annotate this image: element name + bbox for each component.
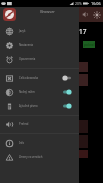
button[interactable]: Jazyk — [0, 24, 79, 38]
staticText: Zmeny vo verziách — [19, 155, 79, 159]
staticText: pokrač — [84, 42, 95, 47]
staticText: Info — [19, 141, 79, 145]
staticText: 20% — [75, 1, 82, 6]
button[interactable]: Toggle on — [61, 86, 73, 98]
button[interactable]: Nočný režim — [0, 85, 79, 99]
staticText: Celá obrazovka — [19, 76, 61, 80]
button[interactable]: Zmeny vo verziách — [0, 150, 79, 164]
staticText: Browser — [40, 9, 55, 14]
staticText: Aj tučné písmo — [19, 104, 61, 108]
button[interactable]: Toggle on — [61, 100, 73, 112]
button[interactable]: Quick settings — [79, 7, 103, 22]
staticText: 16:06 — [91, 1, 101, 6]
staticText: Prehrať — [19, 122, 79, 126]
button[interactable]: Celá obrazovka — [0, 71, 79, 85]
staticText: Jazyk — [19, 29, 79, 33]
staticText: Nastavenia — [19, 43, 79, 47]
staticText: 17 — [79, 27, 87, 36]
button[interactable]: Browser app icon — [3, 8, 16, 21]
button[interactable]: Aj tučné písmo — [0, 99, 79, 113]
button[interactable]: Prehrať — [0, 117, 79, 131]
button[interactable]: Info — [0, 136, 79, 150]
button[interactable]: Upozornenia — [0, 52, 79, 66]
staticText: Nočný režim — [19, 90, 61, 94]
button[interactable]: Nastavenia — [0, 38, 79, 52]
staticText: Upozornenia — [19, 57, 79, 61]
button[interactable]: pokrač — [83, 41, 95, 48]
button[interactable]: Toggle off — [61, 72, 73, 84]
